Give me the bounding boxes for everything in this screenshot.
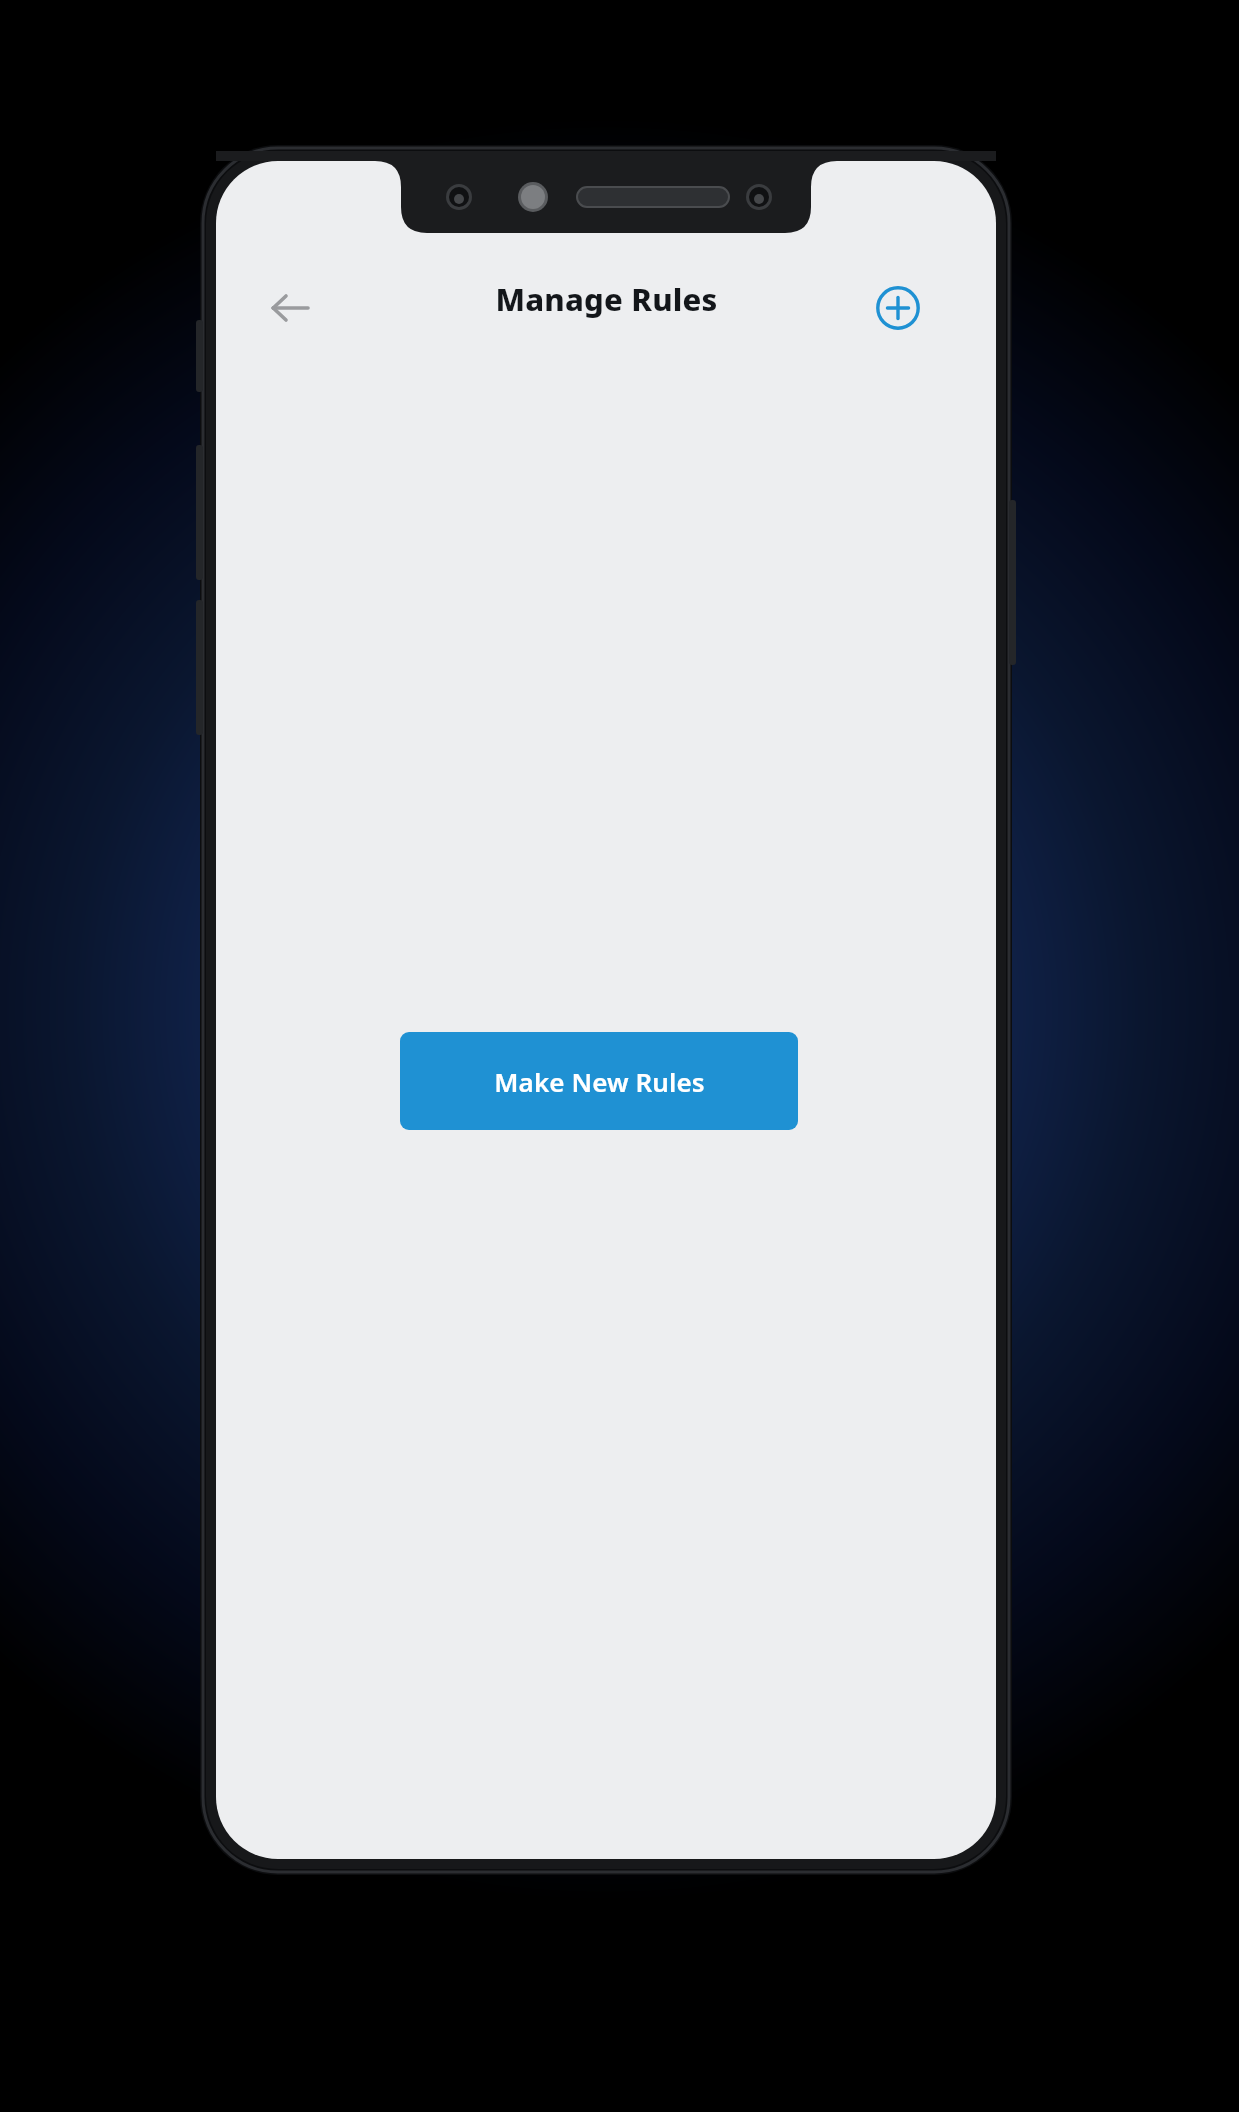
- button[interactable]: Back: [256, 274, 324, 342]
- staticText: Manage Rules: [495, 278, 718, 320]
- button[interactable]: Add rule: [864, 274, 932, 342]
- button[interactable]: Make New Rules: [400, 1032, 798, 1130]
- staticText: Make New Rules: [494, 1064, 705, 1099]
